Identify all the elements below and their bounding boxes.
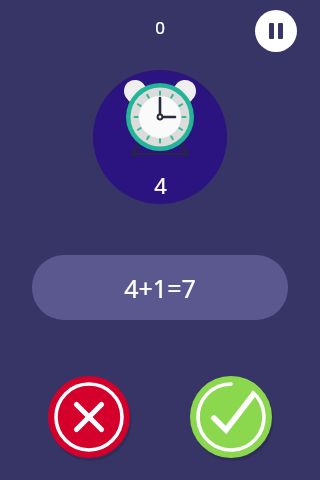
button[interactable]: Wrong bbox=[46, 375, 132, 461]
button[interactable]: Pause bbox=[255, 10, 297, 52]
button[interactable]: Correct bbox=[188, 375, 274, 461]
staticText: 0 bbox=[155, 16, 165, 39]
button[interactable]: 4+1=7 bbox=[32, 255, 288, 320]
staticText: 4+1=7 bbox=[124, 271, 196, 305]
staticText: 4 bbox=[154, 170, 167, 200]
